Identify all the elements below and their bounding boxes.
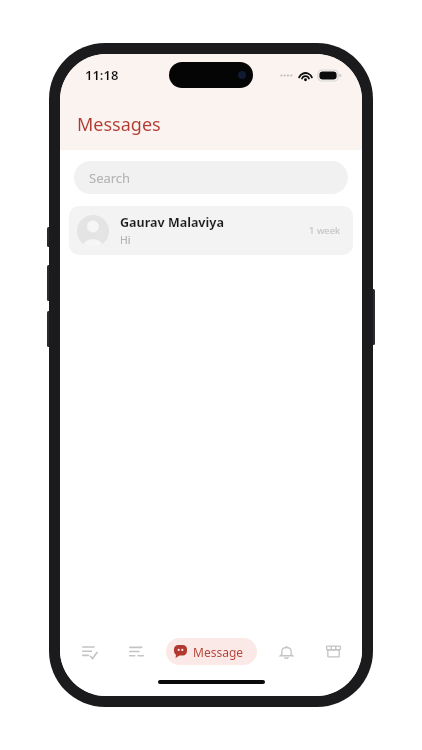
- button[interactable]: Tasks: [71, 633, 107, 669]
- button[interactable]: Message: [166, 638, 257, 665]
- button[interactable]: Notifications: [268, 633, 304, 669]
- button[interactable]: Store: [315, 633, 351, 669]
- staticText: Search: [89, 169, 131, 187]
- staticText: 1 week: [309, 224, 341, 237]
- staticText: Gaurav Malaviya: [120, 214, 224, 231]
- staticText: Message: [193, 644, 244, 660]
- button[interactable]: Search: [74, 161, 348, 194]
- staticText: Messages: [77, 112, 161, 137]
- staticText: Hi: [120, 233, 131, 247]
- button[interactable]: Feed: [118, 633, 154, 669]
- button[interactable]: Gaurav Malaviya: [69, 206, 353, 255]
- staticText: 11:18: [85, 66, 119, 84]
